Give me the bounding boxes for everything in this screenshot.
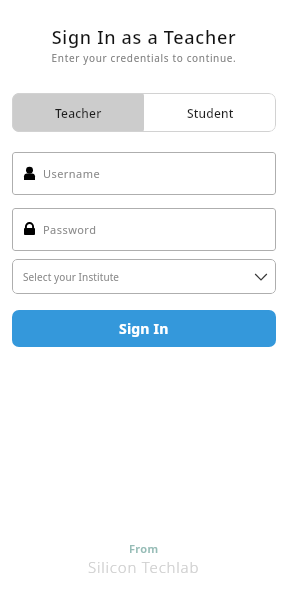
staticText: Username bbox=[43, 166, 101, 181]
other: Username bbox=[24, 167, 35, 180]
staticText: From bbox=[129, 541, 159, 556]
staticText: Teacher bbox=[55, 105, 102, 121]
staticText: Sign In bbox=[119, 319, 169, 338]
button[interactable]: Select your Institute bbox=[12, 259, 276, 294]
button[interactable]: Student bbox=[144, 93, 276, 132]
staticText: Sign In as a Teacher bbox=[0, 25, 288, 50]
staticText: Student bbox=[187, 105, 234, 121]
button[interactable]: Username bbox=[12, 152, 276, 195]
staticText: Silicon Techlab bbox=[88, 557, 200, 577]
staticText: Enter your credentials to continue. bbox=[0, 51, 288, 65]
staticText: Select your Institute bbox=[23, 270, 120, 284]
other: Password bbox=[24, 222, 35, 235]
button[interactable]: Teacher bbox=[12, 93, 144, 132]
button[interactable]: Password bbox=[12, 208, 276, 251]
staticText: Password bbox=[43, 222, 97, 237]
button[interactable]: Sign In bbox=[12, 310, 276, 347]
other: Select your Institute bbox=[255, 273, 267, 281]
